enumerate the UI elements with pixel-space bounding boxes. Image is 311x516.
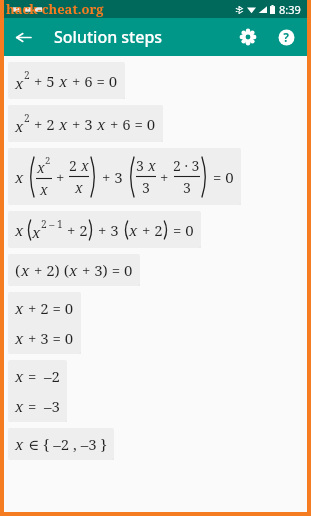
staticText: x: [129, 220, 138, 240]
staticText: ?: [283, 29, 289, 45]
staticText: x: [69, 260, 78, 280]
staticText: +: [156, 167, 173, 187]
staticText: 3: [183, 178, 191, 197]
button[interactable]: Navigate up: [4, 18, 42, 56]
staticText: x: [81, 156, 89, 175]
staticText: + 2) (: [30, 260, 69, 280]
button[interactable]: Step: factoring with fractions: [8, 148, 241, 205]
staticText: + 6 = 0: [106, 114, 156, 134]
button[interactable]: Settings: [229, 18, 267, 56]
staticText: (: [15, 260, 21, 280]
staticText: x: [59, 114, 68, 134]
staticText: Solution steps: [54, 26, 163, 48]
staticText: +: [52, 167, 69, 187]
staticText: x: [97, 114, 106, 134]
staticText: x: [59, 71, 68, 91]
staticText: + 2: [63, 220, 88, 240]
button[interactable]: Result: x is an element of the set minus…: [8, 428, 114, 460]
staticText: 2: [24, 111, 30, 125]
staticText: x: [15, 328, 24, 348]
staticText: hack-cheat.org: [6, 0, 104, 18]
staticText: x: [32, 222, 41, 242]
staticText: = –3: [24, 396, 60, 416]
button[interactable]: Help: [267, 18, 305, 56]
staticText: 2 – 1: [41, 217, 63, 231]
button[interactable]: Step: x plus 2 times x plus 3 equals 0: [8, 254, 140, 286]
staticText: + 3 = 0: [24, 328, 74, 348]
staticText: x: [148, 156, 156, 175]
staticText: 2 · 3: [173, 156, 200, 175]
button[interactable]: Step: x squared plus 5 x plus 6 equals 0: [8, 62, 125, 99]
staticText: 2: [69, 156, 81, 175]
staticText: + 2: [138, 220, 163, 240]
staticText: 8:39: [279, 2, 301, 17]
button[interactable]: Step: simplified powers: [8, 211, 201, 248]
staticText: x: [15, 220, 24, 240]
staticText: + 3: [98, 167, 127, 187]
staticText: 2: [45, 154, 51, 167]
staticText: x: [15, 73, 24, 93]
button[interactable]: Step: x squared plus 2 x plus 3 x plus 6…: [8, 105, 163, 142]
staticText: + 2: [30, 114, 59, 134]
button[interactable]: Step: x equals minus 2 and x equals minu…: [8, 360, 67, 422]
staticText: ∈ { –2 , –3 }: [24, 434, 107, 454]
staticText: + 3: [94, 220, 123, 240]
staticText: = 0: [209, 167, 234, 187]
staticText: + 2 = 0: [24, 298, 74, 318]
staticText: = –2: [24, 366, 60, 386]
staticText: 3: [136, 156, 148, 175]
staticText: + 6 = 0: [68, 71, 118, 91]
staticText: + 3: [68, 114, 97, 134]
staticText: = 0: [169, 220, 194, 240]
staticText: 2: [24, 68, 30, 82]
staticText: x: [15, 298, 24, 318]
button[interactable]: Step: x plus 2 equals 0 and x plus 3 equ…: [8, 292, 81, 354]
staticText: x: [15, 167, 24, 187]
staticText: x: [75, 178, 83, 197]
staticText: x: [37, 158, 45, 177]
staticText: + 3) = 0: [78, 260, 133, 280]
staticText: + 5: [30, 71, 59, 91]
staticText: x: [40, 180, 48, 199]
staticText: x: [15, 116, 24, 136]
staticText: x: [21, 260, 30, 280]
staticText: x: [15, 366, 24, 386]
staticText: 3: [142, 178, 150, 197]
staticText: x: [15, 396, 24, 416]
staticText: x: [15, 434, 24, 454]
